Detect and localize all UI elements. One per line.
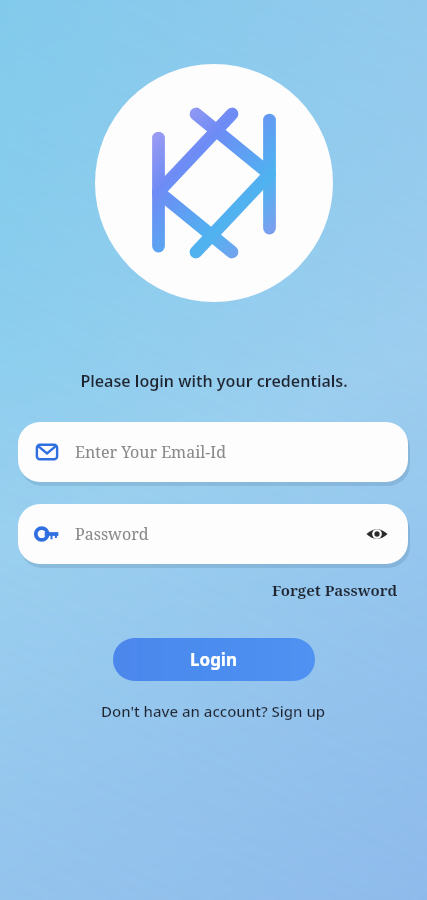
other: Password xyxy=(36,523,58,545)
staticText: Login xyxy=(190,648,238,671)
staticText: Don't have an account? Sign up xyxy=(101,701,326,721)
staticText: Forget Password xyxy=(272,580,398,600)
button[interactable]: Password xyxy=(18,504,408,564)
button[interactable]: Forget Password xyxy=(268,578,402,602)
button[interactable]: Email xyxy=(18,422,408,482)
button[interactable]: Don't have an account? Sign up xyxy=(95,699,332,723)
staticText: Enter Your Email-Id xyxy=(75,441,390,463)
button[interactable]: Login xyxy=(113,638,315,681)
staticText: Password xyxy=(75,523,364,545)
button[interactable]: Show password xyxy=(364,521,390,547)
staticText: Please login with your credentials. xyxy=(80,370,348,392)
other: Email xyxy=(36,441,58,463)
